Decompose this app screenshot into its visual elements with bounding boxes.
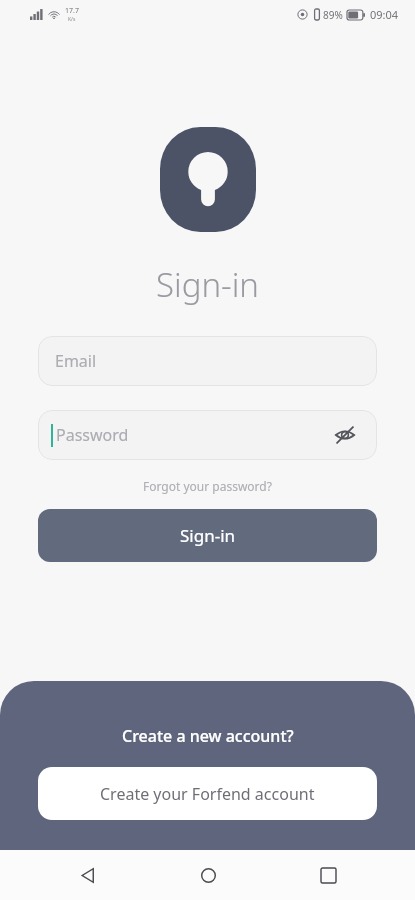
staticText: Email bbox=[55, 350, 97, 372]
staticText: Forgot your password? bbox=[143, 478, 272, 494]
button[interactable]: Forgot your password? bbox=[137, 476, 278, 496]
button[interactable]: Recent apps bbox=[268, 850, 388, 900]
staticText: K/s bbox=[68, 16, 76, 23]
staticText: 09:04 bbox=[370, 7, 399, 22]
staticText: Sign-in bbox=[156, 262, 259, 307]
button[interactable]: Email bbox=[38, 336, 377, 386]
button[interactable]: Show password bbox=[331, 421, 359, 449]
staticText: Create your Forfend account bbox=[100, 783, 315, 805]
staticText: Create a new account? bbox=[122, 725, 294, 747]
button[interactable]: Home bbox=[148, 850, 268, 900]
staticText: Sign-in bbox=[180, 524, 236, 547]
staticText: 89% bbox=[323, 8, 343, 22]
staticText: Password bbox=[56, 424, 129, 446]
button[interactable]: Create your Forfend account bbox=[38, 767, 377, 820]
button[interactable]: Password bbox=[38, 410, 377, 460]
button[interactable]: Sign-in bbox=[38, 509, 377, 562]
button[interactable]: Back bbox=[28, 850, 148, 900]
staticText: 17.7 bbox=[65, 6, 79, 16]
